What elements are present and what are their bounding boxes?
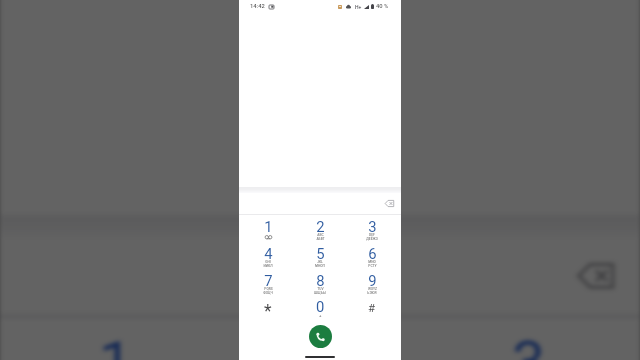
button[interactable]: # [346, 293, 398, 320]
button[interactable]: 9 [346, 266, 398, 293]
staticText: 4 [264, 245, 273, 262]
staticText: 7 [264, 272, 273, 289]
button[interactable]: 2 [217, 307, 423, 360]
staticText: ДЕЁЖЗ [366, 237, 378, 241]
button[interactable]: 8 [294, 266, 346, 293]
staticText: ABC [317, 233, 324, 237]
staticText: МНОП [315, 264, 325, 268]
staticText: # [368, 301, 376, 314]
button[interactable]: 5 [294, 239, 346, 266]
button[interactable]: * [242, 293, 294, 320]
staticText: 9 [368, 272, 377, 289]
button[interactable]: 0 [294, 293, 346, 320]
button[interactable]: 3 [423, 307, 630, 360]
button[interactable]: 1 [242, 212, 294, 239]
staticText: 8 [316, 272, 325, 289]
staticText: H+ [355, 4, 362, 10]
staticText: WXYZ [368, 287, 377, 291]
staticText: 40 % [376, 3, 389, 10]
staticText: 5 [316, 245, 325, 262]
staticText: 1 [264, 218, 273, 235]
staticText: 14:42 [250, 3, 265, 10]
staticText: 0 [316, 298, 325, 315]
staticText: ИЙКЛ [263, 264, 273, 268]
staticText: TUV [317, 287, 324, 291]
button[interactable]: 2 [294, 212, 346, 239]
button[interactable]: 4 [242, 239, 294, 266]
staticText: 1 [98, 329, 133, 360]
staticText: АБВГ [316, 237, 325, 241]
staticText: PQRS [264, 287, 273, 291]
staticText: JKL [317, 260, 323, 264]
staticText: 2 [304, 329, 340, 360]
staticText: 2 [316, 218, 325, 235]
staticText: ЬЭЮЯ [367, 291, 377, 295]
button[interactable]: Call [309, 325, 332, 348]
staticText: РСТУ [368, 264, 377, 268]
staticText: * [264, 301, 272, 322]
button[interactable]: Backspace [381, 195, 398, 212]
staticText: GHI [265, 260, 271, 264]
staticText: ШЩЪЫ [314, 291, 326, 295]
staticText: 6 [368, 245, 377, 262]
button[interactable]: 1 [10, 307, 217, 360]
staticText: ФХЦЧ [263, 291, 273, 295]
staticText: + [319, 313, 322, 318]
button[interactable]: 7 [242, 266, 294, 293]
button[interactable]: 3 [346, 212, 398, 239]
staticText: DEF [369, 233, 375, 237]
staticText: 3 [368, 218, 377, 235]
staticText: MNO [368, 260, 376, 264]
staticText: 3 [511, 329, 546, 360]
button[interactable]: 6 [346, 239, 398, 266]
button[interactable]: Backspace [562, 244, 630, 307]
